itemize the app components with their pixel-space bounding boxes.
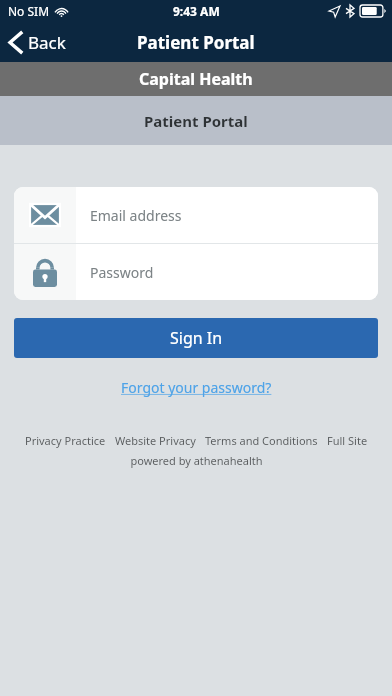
- staticText: Forgot your password?: [121, 378, 272, 397]
- button[interactable]: Password: [14, 244, 378, 300]
- button[interactable]: Forgot your password?: [115, 376, 278, 399]
- staticText: Terms and Conditions: [205, 433, 318, 448]
- button[interactable]: Sign In: [14, 318, 378, 358]
- button[interactable]: Full Site: [327, 433, 368, 448]
- staticText: Privacy Practice: [25, 433, 106, 448]
- staticText: powered by athenahealth: [130, 453, 263, 468]
- button[interactable]: Email address: [14, 187, 378, 243]
- button[interactable]: Website Privacy: [115, 433, 196, 448]
- staticText: Full Site: [327, 433, 368, 448]
- button[interactable]: Privacy Practice: [25, 433, 106, 448]
- staticText: Sign In: [170, 327, 223, 349]
- staticText: No SIM: [8, 3, 50, 19]
- staticText: Patient Portal: [137, 31, 255, 54]
- staticText: Patient Portal: [144, 111, 248, 131]
- staticText: Password: [90, 263, 154, 282]
- staticText: 9:43 AM: [173, 3, 220, 19]
- staticText: Email address: [90, 206, 182, 225]
- staticText: Back: [28, 31, 66, 54]
- button[interactable]: Back: [0, 25, 78, 60]
- button[interactable]: Terms and Conditions: [205, 433, 318, 448]
- staticText: Capital Health: [139, 68, 253, 90]
- staticText: Website Privacy: [115, 433, 196, 448]
